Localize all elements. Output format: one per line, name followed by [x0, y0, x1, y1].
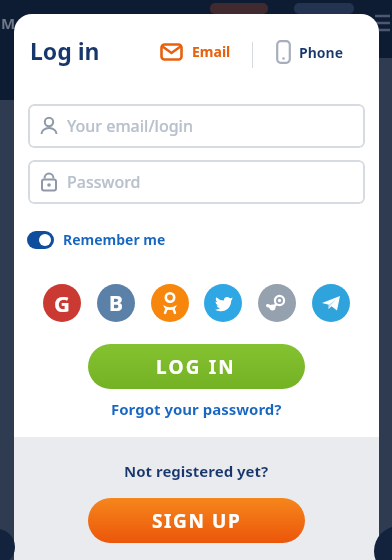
button[interactable]: [258, 284, 296, 322]
staticText: B: [109, 289, 123, 318]
staticText: Not registered yet?: [124, 461, 269, 481]
staticText: SIGN UP: [152, 508, 242, 534]
staticText: Email: [192, 42, 231, 61]
staticText: Remember me: [63, 230, 166, 249]
staticText: Your email/login: [67, 115, 193, 137]
button[interactable]: Email: [154, 36, 237, 67]
staticText: Forgot your password?: [111, 399, 282, 419]
staticText: Password: [67, 171, 141, 193]
button[interactable]: SIGN UP: [88, 498, 305, 543]
button[interactable]: LOG IN: [88, 344, 305, 389]
button[interactable]: Your email/login: [28, 104, 365, 148]
button[interactable]: B: [97, 284, 135, 322]
staticText: G: [54, 288, 70, 318]
button[interactable]: Phone: [270, 34, 350, 70]
staticText: LOG IN: [156, 354, 237, 380]
staticText: Log in: [30, 35, 100, 66]
button[interactable]: Forgot your password?: [14, 393, 379, 425]
button[interactable]: [312, 284, 350, 322]
staticText: Phone: [299, 43, 344, 62]
button[interactable]: G: [43, 284, 81, 322]
button[interactable]: Password: [28, 160, 365, 204]
staticText: M: [1, 13, 16, 33]
button[interactable]: [151, 284, 189, 322]
button[interactable]: [204, 284, 242, 322]
button[interactable]: Remember me: [27, 226, 166, 253]
